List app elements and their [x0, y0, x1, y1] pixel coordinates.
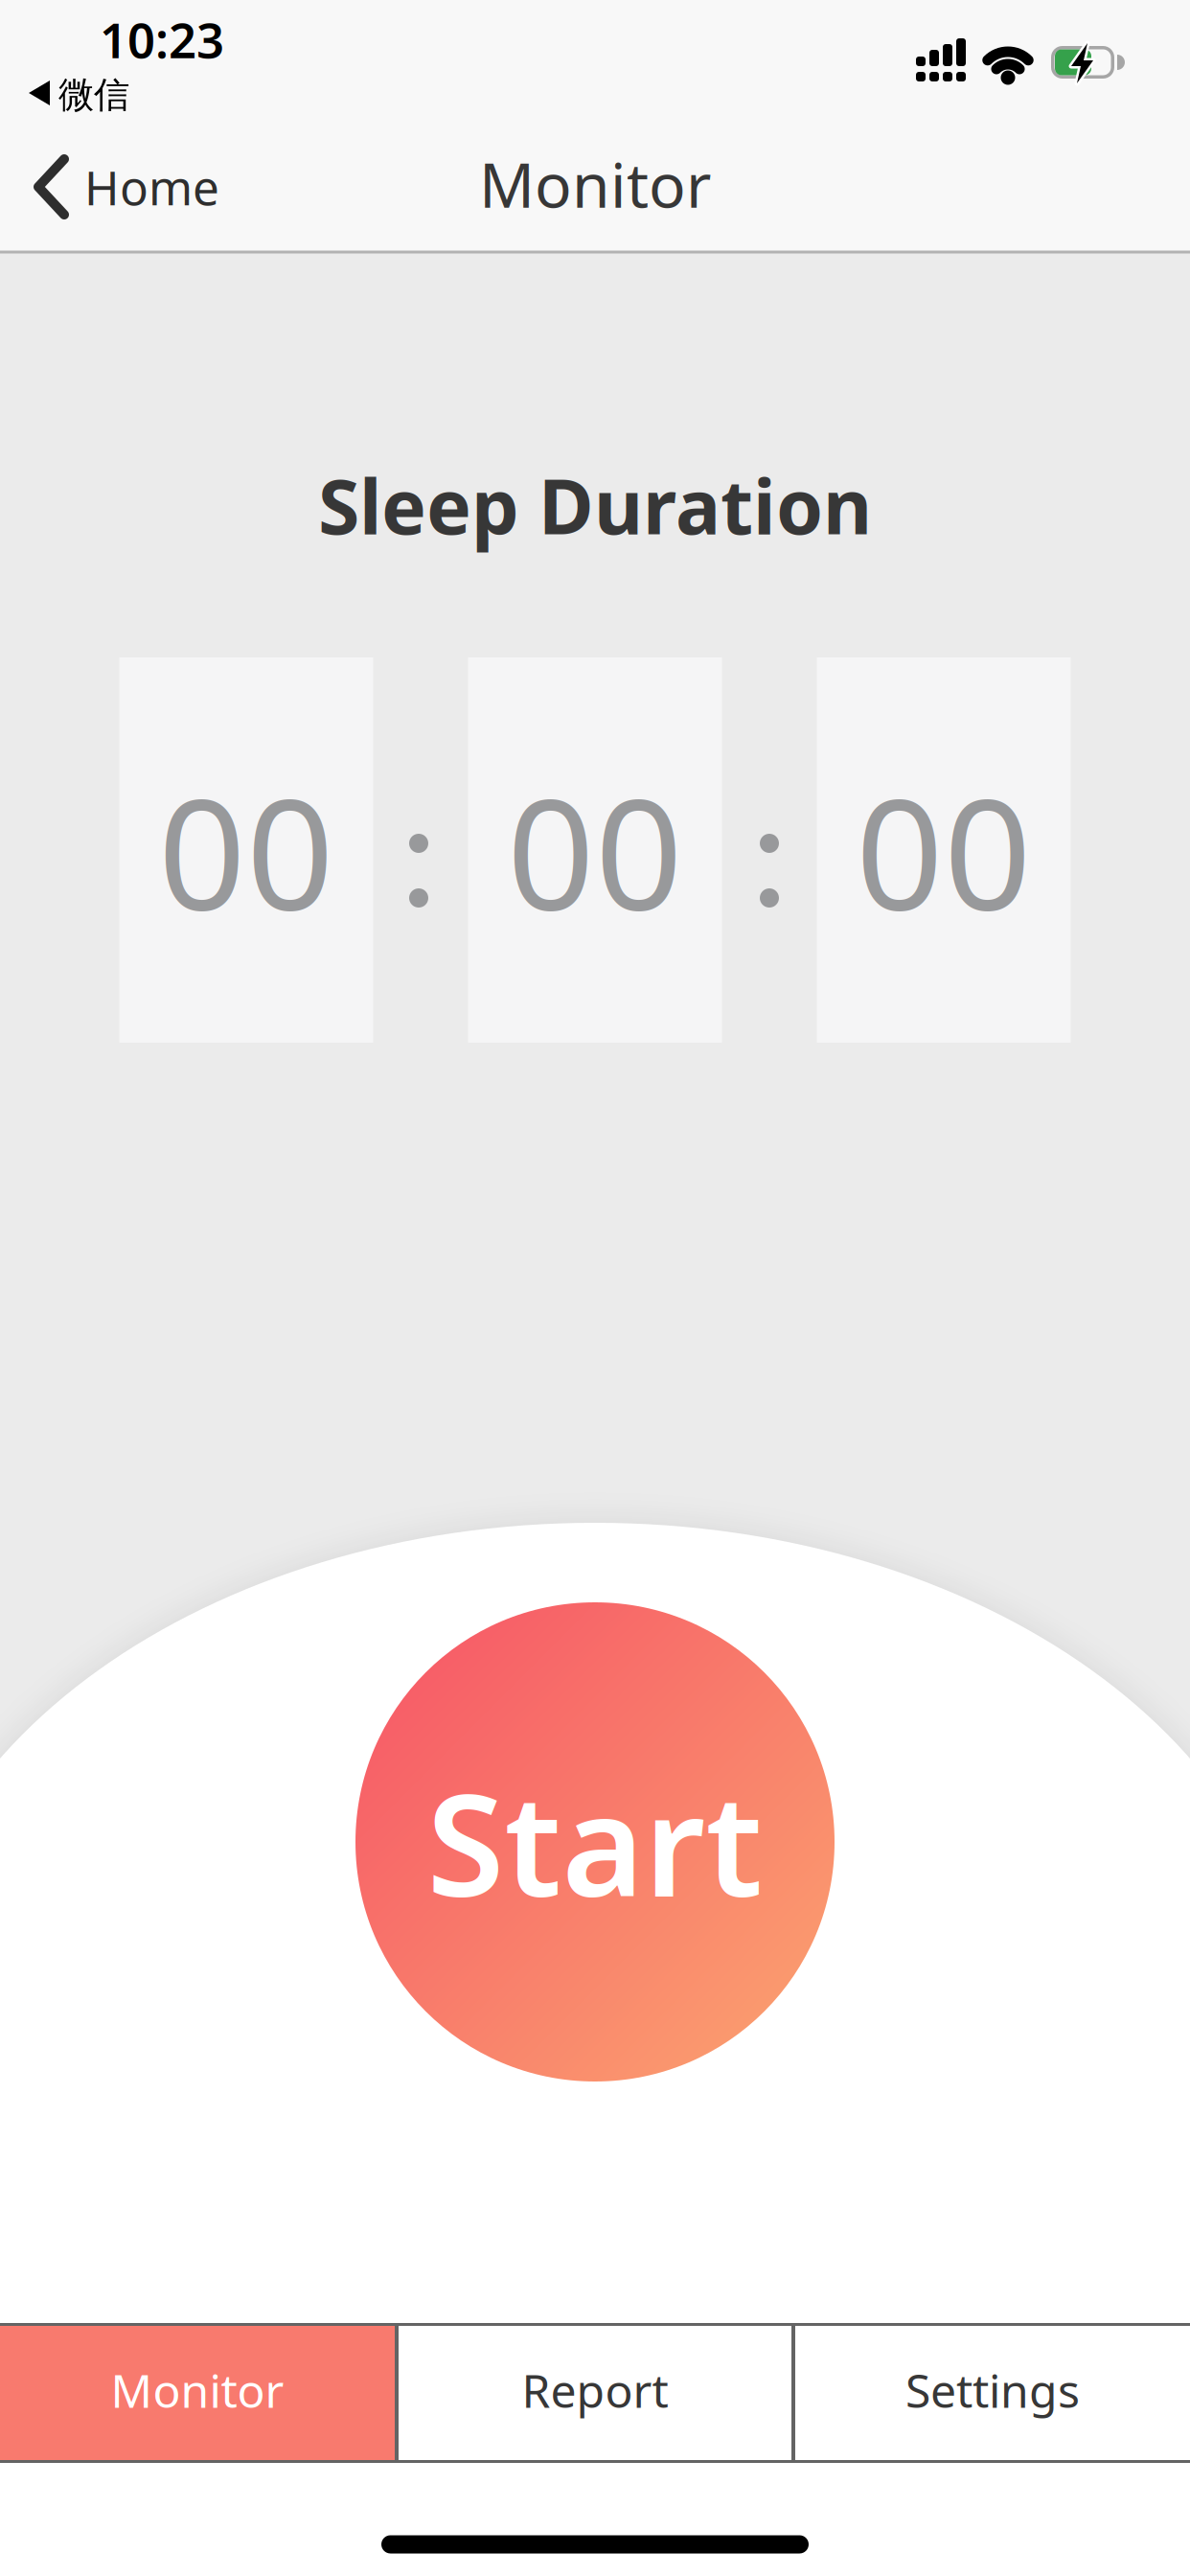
button[interactable]: Back	[34, 155, 219, 218]
button[interactable]: Settings	[795, 2326, 1190, 2460]
staticText: 微信	[58, 73, 129, 117]
button[interactable]: Report	[399, 2326, 791, 2460]
staticText: 00	[158, 748, 334, 952]
button[interactable]: Monitor	[0, 2326, 395, 2460]
staticText: Home	[84, 155, 219, 218]
staticText: Settings	[905, 2360, 1080, 2421]
staticText: 00	[507, 748, 683, 952]
staticText: 00	[856, 748, 1032, 952]
staticText: Start	[427, 1749, 763, 1935]
staticText: Monitor	[479, 143, 711, 225]
staticText: Sleep Duration	[318, 455, 872, 555]
button[interactable]: Start	[355, 1602, 835, 2081]
staticText: Monitor	[111, 2360, 284, 2421]
staticText: 10:23	[100, 7, 224, 72]
staticText: Report	[522, 2360, 668, 2421]
